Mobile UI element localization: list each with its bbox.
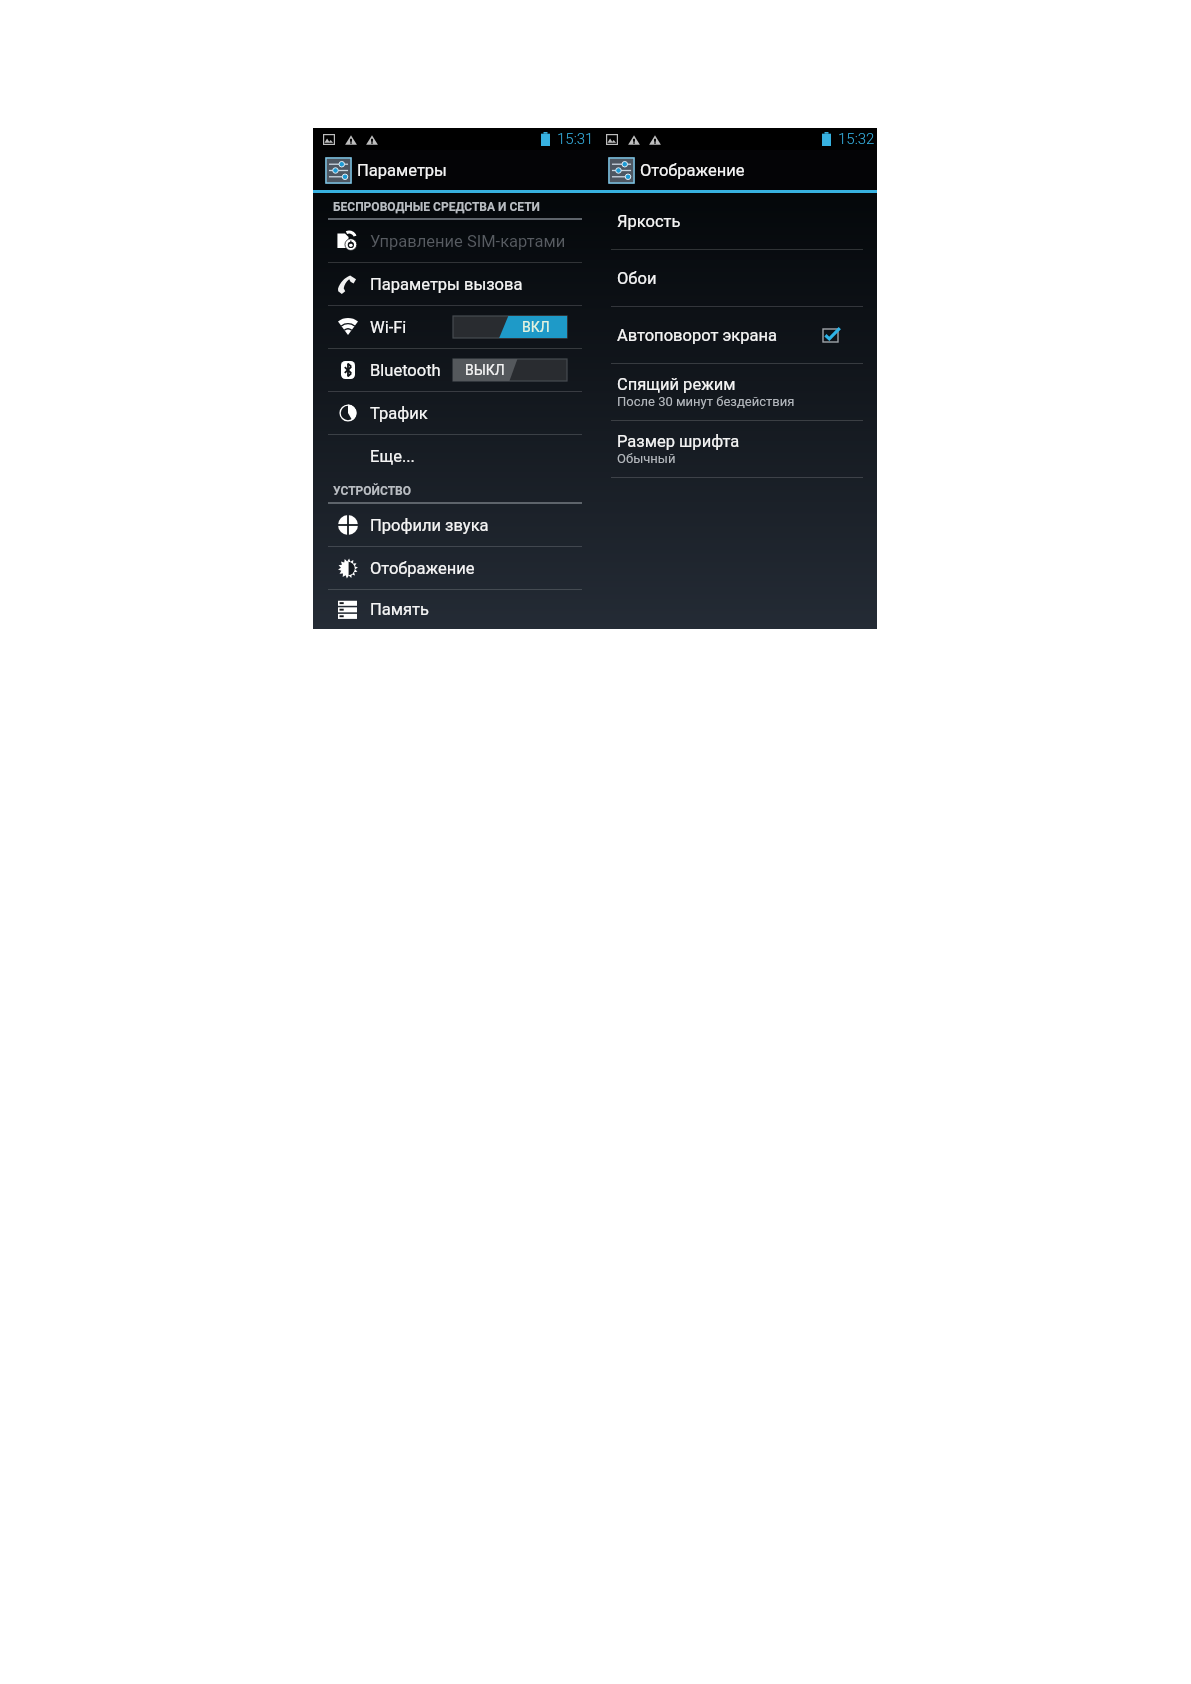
button[interactable]: Выключено [453,359,567,381]
staticText: Управление SIM-картами [370,232,566,251]
staticText: Обои [617,269,657,288]
staticText: Профили звука [370,516,489,535]
staticText: 15:32 [838,130,875,148]
button[interactable]: Еще... [313,435,596,477]
button[interactable]: Параметры вызова [313,263,596,305]
button[interactable]: Размер шрифта [596,421,877,477]
staticText: Wi-Fi [370,318,407,337]
button[interactable]: Bluetooth [313,349,596,391]
button[interactable]: Wi-Fi [313,306,596,348]
button[interactable]: Управление SIM-картами [313,220,596,262]
button[interactable]: Включено [453,316,567,338]
staticText: УСТРОЙСТВО [333,484,412,498]
button[interactable]: Автоповорот экрана [596,307,877,363]
button[interactable]: Профили звука [313,504,596,546]
button[interactable]: Яркость [596,193,877,249]
button[interactable]: Автоповорот экрана [823,329,838,342]
button[interactable]: Отображение [596,150,877,190]
staticText: Яркость [617,212,681,231]
staticText: Память [370,600,429,619]
staticText: Еще... [370,447,415,466]
staticText: БЕСПРОВОДНЫЕ СРЕДСТВА И СЕТИ [333,200,541,214]
staticText: Параметры вызова [370,275,523,294]
staticText: Размер шрифта [617,432,740,451]
staticText: Параметры [357,161,447,180]
staticText: ВЫКЛ [465,362,505,378]
button[interactable]: Трафик [313,392,596,434]
staticText: Автоповорот экрана [617,326,777,345]
staticText: Bluetooth [370,361,441,380]
staticText: Отображение [640,161,745,180]
button[interactable]: Параметры [313,150,596,190]
staticText: Трафик [370,404,428,423]
staticText: ВКЛ [522,319,550,335]
staticText: 15:31 [557,130,594,148]
button[interactable]: Обои [596,250,877,306]
staticText: Спящий режим [617,375,736,394]
button[interactable]: Память [313,590,596,629]
staticText: После 30 минут бездействия [617,394,795,409]
button[interactable]: Спящий режим [596,364,877,420]
button[interactable]: Отображение [313,547,596,589]
staticText: Обычный [617,451,676,466]
staticText: Отображение [370,559,475,578]
